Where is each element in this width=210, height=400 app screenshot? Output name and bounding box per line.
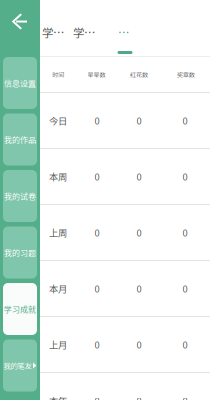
staticText: 上月 <box>49 338 67 351</box>
staticText: 信息设置 <box>4 77 36 89</box>
button[interactable]: 我的试卷 <box>3 170 37 222</box>
staticText: 0 <box>182 338 187 351</box>
staticText: 0 <box>136 394 141 400</box>
staticText: 0 <box>136 282 141 295</box>
staticText: 成就 <box>118 24 132 41</box>
staticText: 时间 <box>52 70 64 79</box>
staticText: 0 <box>182 226 187 239</box>
button[interactable]: 我的作品 <box>3 113 37 165</box>
staticText: 0 <box>136 170 141 183</box>
staticText: 0 <box>136 114 141 127</box>
staticText: 本周 <box>49 170 67 183</box>
button[interactable]: 信息设置 <box>3 57 37 109</box>
button[interactable]: 我的习题 <box>3 226 37 278</box>
staticText: 我的试卷 <box>4 190 36 202</box>
staticText: 我的习题 <box>4 247 36 258</box>
button[interactable]: 我的笔友 <box>3 339 37 391</box>
staticText: 奖章数 <box>177 70 195 79</box>
staticText: 0 <box>94 226 99 239</box>
staticText: 学习时长 <box>73 24 98 41</box>
staticText: 我的作品 <box>4 134 36 145</box>
staticText: 0 <box>182 282 187 295</box>
button[interactable]: 成就 <box>118 0 132 56</box>
staticText: 0 <box>94 114 99 127</box>
staticText: 本年 <box>49 394 67 400</box>
staticText: 0 <box>182 394 187 400</box>
button[interactable]: 学习打卡 <box>42 0 67 56</box>
staticText: 0 <box>182 114 187 127</box>
staticText: 上周 <box>49 226 67 239</box>
button[interactable]: Back <box>0 0 40 43</box>
button[interactable]: 学习成就 <box>3 283 37 335</box>
staticText: 0 <box>94 282 99 295</box>
button[interactable]: 学习时长 <box>73 0 98 56</box>
staticText: 红花数 <box>130 70 148 79</box>
staticText: 星星数 <box>87 70 105 79</box>
staticText: 0 <box>94 338 99 351</box>
staticText: 学习打卡 <box>42 24 67 41</box>
staticText: 0 <box>94 170 99 183</box>
staticText: 0 <box>136 338 141 351</box>
staticText: 学习成就 <box>4 303 36 315</box>
staticText: 0 <box>136 226 141 239</box>
staticText: 今日 <box>49 114 67 127</box>
staticText: 我的笔友 <box>4 360 32 371</box>
staticText: 0 <box>182 170 187 183</box>
staticText: 本月 <box>49 282 67 295</box>
staticText: 0 <box>94 394 99 400</box>
